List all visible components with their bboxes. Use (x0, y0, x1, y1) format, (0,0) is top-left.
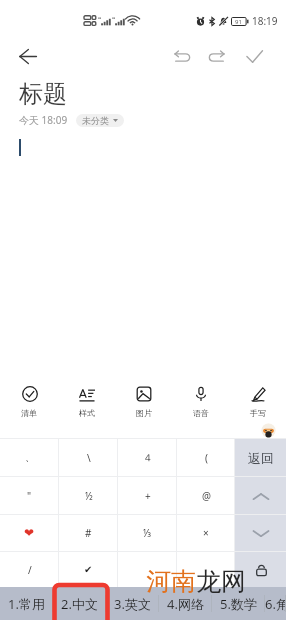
button[interactable]: # (59, 515, 118, 551)
staticText: 5.数学 (220, 595, 257, 613)
staticText: \ (87, 451, 91, 465)
staticText: ½ (85, 489, 93, 503)
button[interactable]: 1.常用 (0, 587, 53, 620)
staticText: 6.角 (265, 595, 286, 613)
button[interactable]: 6.角 (265, 587, 286, 620)
staticText: 91 (231, 18, 246, 26)
button[interactable]: 语音 (172, 378, 229, 424)
staticText: + (145, 489, 151, 503)
button[interactable]: Done (238, 40, 270, 72)
button[interactable]: \ (59, 439, 118, 476)
button[interactable]: / (0, 552, 59, 587)
button[interactable]: 3.英文 (106, 587, 159, 620)
button[interactable]: Page down (235, 515, 286, 551)
staticText: ( (205, 451, 208, 465)
button[interactable]: 图片 (115, 378, 172, 424)
button[interactable]: 返回 (235, 439, 286, 476)
staticText: 18:19 (252, 14, 278, 28)
button[interactable]: 未分类 (76, 114, 124, 127)
staticText: 未分类 (82, 115, 109, 126)
button[interactable]: @ (177, 477, 235, 514)
other: Page down (249, 526, 273, 540)
staticText: ４ (143, 451, 153, 464)
button[interactable]: Lock (235, 552, 286, 587)
staticText: " (27, 489, 32, 503)
button[interactable]: Redo (200, 40, 232, 72)
button[interactable]: ４ (118, 439, 177, 476)
button[interactable]: 2.中文 (53, 587, 106, 620)
staticText: 2.中文 (61, 595, 98, 613)
staticText: 、 (25, 451, 35, 464)
staticText: / (28, 563, 32, 577)
button[interactable]: + (118, 477, 177, 514)
staticText: 语音 (193, 408, 209, 418)
button[interactable]: 4.网络 (159, 587, 212, 620)
staticText: ✔ (84, 564, 93, 576)
staticText: × (203, 526, 209, 540)
staticText: ❤ (24, 526, 35, 540)
staticText: 4.网络 (167, 595, 204, 613)
button[interactable]: ⅓ (118, 515, 177, 551)
staticText: 手写 (250, 408, 266, 418)
other: Page up (249, 489, 273, 503)
button[interactable]: × (177, 515, 235, 551)
staticText: 返回 (248, 450, 274, 466)
button[interactable]: ❤ (0, 515, 59, 551)
staticText: 样式 (79, 408, 95, 418)
staticText: 河南 (146, 566, 196, 597)
button[interactable] (118, 552, 177, 587)
staticText: ⅓ (143, 526, 152, 540)
staticText: 标题 (19, 79, 67, 109)
other: Lock (251, 560, 271, 580)
staticText: 龙网 (196, 566, 246, 597)
staticText: 今天 18:09 (19, 113, 68, 127)
button[interactable]: ✔ (59, 552, 118, 587)
button[interactable]: 、 (0, 439, 59, 476)
button[interactable]: Emoji (261, 423, 276, 438)
staticText: # (85, 526, 92, 540)
button[interactable]: Undo (166, 40, 198, 72)
button[interactable]: ½ (59, 477, 118, 514)
staticText: 清单 (21, 408, 37, 418)
staticText: 3.英文 (114, 595, 151, 613)
staticText: 1.常用 (8, 595, 45, 613)
button[interactable]: " (0, 477, 59, 514)
button[interactable]: 样式 (58, 378, 115, 424)
button[interactable] (177, 552, 235, 587)
button[interactable]: Page up (235, 477, 286, 514)
staticText: @ (202, 489, 211, 503)
button[interactable]: 清单 (0, 378, 58, 424)
button[interactable]: 5.数学 (212, 587, 265, 620)
staticText: 图片 (136, 408, 152, 418)
button[interactable]: ( (177, 439, 235, 476)
button[interactable]: 手写 (229, 378, 286, 424)
button[interactable]: Back (11, 39, 45, 73)
